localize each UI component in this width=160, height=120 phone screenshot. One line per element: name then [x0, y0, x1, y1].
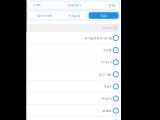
staticText: שמע [102, 108, 111, 113]
button[interactable]: אבי כהן [26, 68, 121, 80]
button[interactable]: מיכל [26, 44, 121, 56]
staticText: מפה [32, 3, 40, 7]
button[interactable]: ערוך [107, 2, 120, 8]
button[interactable]: חיפוש [28, 24, 120, 32]
button[interactable]: אחרונים [29, 12, 59, 19]
staticText: רשימות [67, 3, 80, 7]
staticText: מועדף [68, 13, 80, 18]
button[interactable]: דנה לי [26, 56, 121, 68]
staticText: דנה לי [100, 60, 111, 64]
button[interactable]: שמע [26, 105, 121, 116]
button[interactable]: מועדף [59, 12, 89, 19]
staticText: יוסף [103, 84, 111, 89]
button[interactable]: הכל [89, 12, 119, 19]
button[interactable]: יוסף [26, 81, 121, 92]
staticText: ערוך [107, 3, 115, 7]
staticText: אבי כהן [98, 72, 111, 76]
button[interactable]: פרטי התקשרות [26, 32, 121, 44]
staticText: אחרונים [36, 13, 51, 18]
staticText: מיכל [103, 48, 111, 52]
staticText: הכל [100, 13, 107, 18]
staticText: חיפוש [102, 26, 112, 30]
staticText: פרטי התקשרות [84, 36, 111, 40]
button[interactable]: תמר [26, 117, 121, 120]
button[interactable]: רות לי [26, 93, 121, 104]
staticText: רות לי [101, 96, 111, 101]
button[interactable]: מפה [28, 2, 40, 8]
